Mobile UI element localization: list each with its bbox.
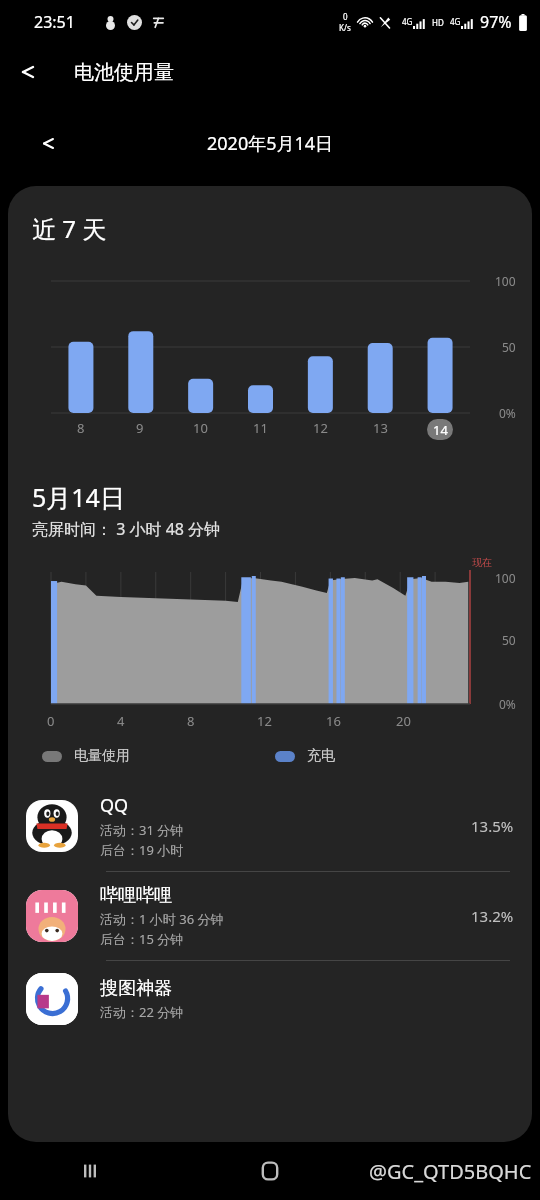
staticText: 20 [396, 712, 411, 730]
button[interactable]: 哔哩哔哩 [8, 872, 532, 960]
button[interactable]: 搜图神器 [8, 961, 532, 1037]
staticText: 50 [502, 339, 516, 355]
staticText: 50 [502, 632, 516, 648]
button[interactable]: Back [0, 44, 56, 100]
staticText: 亮屏时间： 3 小时 48 分钟 [32, 518, 221, 540]
staticText: K/s [339, 22, 351, 33]
staticText: 23:51 [34, 11, 75, 33]
staticText: 充电 [307, 747, 335, 765]
staticText: 16 [326, 712, 341, 730]
staticText: 12 [257, 712, 272, 730]
staticText: HD [432, 17, 444, 28]
staticText: 活动：1 小时 36 分钟 [100, 910, 224, 928]
staticText: 活动：22 分钟 [100, 1003, 184, 1021]
staticText: 后台：19 小时 [100, 841, 184, 859]
staticText: 4G [402, 16, 413, 27]
staticText: 0% [499, 405, 516, 421]
staticText: @GC_QTD5BQHC [369, 1158, 532, 1185]
staticText: 5月14日 [32, 480, 125, 514]
staticText: 97% [480, 11, 512, 33]
button[interactable]: Home [180, 1142, 360, 1200]
button[interactable]: QQ [8, 781, 532, 871]
staticText: 活动：31 分钟 [100, 821, 184, 839]
staticText: 电池使用量 [74, 60, 174, 85]
staticText: 0 [343, 11, 348, 22]
staticText: 11 [253, 419, 268, 437]
button[interactable]: Back [360, 1142, 540, 1200]
staticText: 9 [136, 419, 144, 437]
staticText: 现在 [472, 556, 492, 569]
staticText: 电量使用 [74, 747, 130, 765]
staticText: 13 [373, 419, 388, 437]
button[interactable]: Recents [0, 1142, 180, 1200]
staticText: 4G [450, 16, 461, 27]
staticText: 14 [433, 421, 448, 439]
staticText: 12 [313, 419, 328, 437]
staticText: 后台：15 分钟 [100, 930, 184, 948]
staticText: 搜图神器 [100, 977, 172, 1000]
staticText: 0 [47, 712, 55, 730]
staticText: 0% [499, 696, 516, 712]
staticText: 8 [187, 712, 195, 730]
staticText: 13.2% [471, 906, 514, 926]
button[interactable]: Previous day [26, 121, 70, 165]
staticText: 2020年5月14日 [207, 131, 334, 156]
staticText: 100 [495, 273, 516, 289]
staticText: 100 [495, 570, 516, 586]
staticText: QQ [100, 793, 129, 818]
staticText: 哔哩哔哩 [100, 884, 172, 907]
staticText: 近 7 天 [32, 212, 107, 245]
staticText: 10 [193, 419, 208, 437]
staticText: 13.5% [471, 816, 514, 836]
staticText: 8 [77, 419, 85, 437]
staticText: 4 [117, 712, 125, 730]
